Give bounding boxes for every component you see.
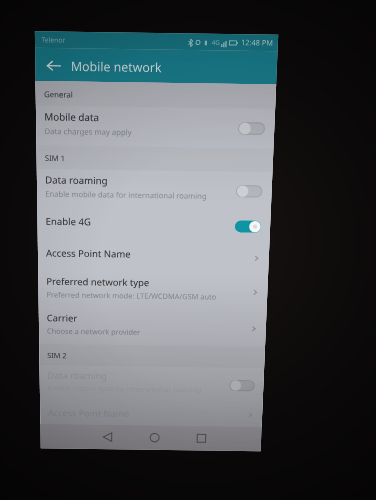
staticText: 12:48 PM [241, 38, 274, 49]
button[interactable]: Back [40, 52, 66, 78]
button[interactable]: Toggle [235, 220, 261, 233]
staticText: Preferred network mode: LTE/WCDMA/GSM au… [46, 290, 217, 302]
button[interactable]: Mobile data [36, 105, 275, 149]
staticText: SIM 2 [47, 350, 67, 360]
staticText: General [44, 89, 73, 100]
button[interactable]: Data roaming [40, 365, 264, 403]
staticText: Mobile network [71, 57, 162, 75]
staticText: Choose a network provider [47, 326, 141, 337]
button[interactable]: Back [84, 425, 131, 449]
staticText: Carrier [47, 312, 77, 324]
button[interactable]: Access Point Name [40, 400, 263, 427]
button[interactable]: Recents [178, 426, 225, 451]
staticText: Enable 4G [45, 215, 91, 228]
button[interactable]: Data roaming [37, 169, 272, 211]
staticText: Access Point Name [46, 247, 131, 261]
button[interactable]: Enable 4G [37, 208, 271, 243]
staticText: Preferred network type [46, 275, 150, 289]
button[interactable]: Toggle [236, 185, 263, 198]
staticText: 4G [211, 38, 220, 47]
staticText: Enable mobile data for international roa… [48, 383, 202, 394]
button[interactable]: Preferred network type [38, 271, 268, 311]
staticText: Data charges may apply [44, 126, 132, 137]
button[interactable]: Toggle [229, 380, 255, 391]
staticText: Access Point Name [48, 407, 130, 420]
staticText: Mobile data [44, 110, 99, 124]
staticText: SIM 1 [45, 153, 65, 163]
button[interactable]: Home [131, 425, 178, 450]
staticText: Telenor [41, 35, 65, 45]
button[interactable]: Toggle [238, 122, 265, 135]
button[interactable]: Access Point Name [38, 239, 269, 274]
staticText: Data roaming [47, 369, 108, 382]
button[interactable]: Carrier [39, 308, 266, 347]
staticText: Enable mobile data for international roa… [45, 188, 208, 201]
staticText: Data roaming [45, 173, 108, 187]
